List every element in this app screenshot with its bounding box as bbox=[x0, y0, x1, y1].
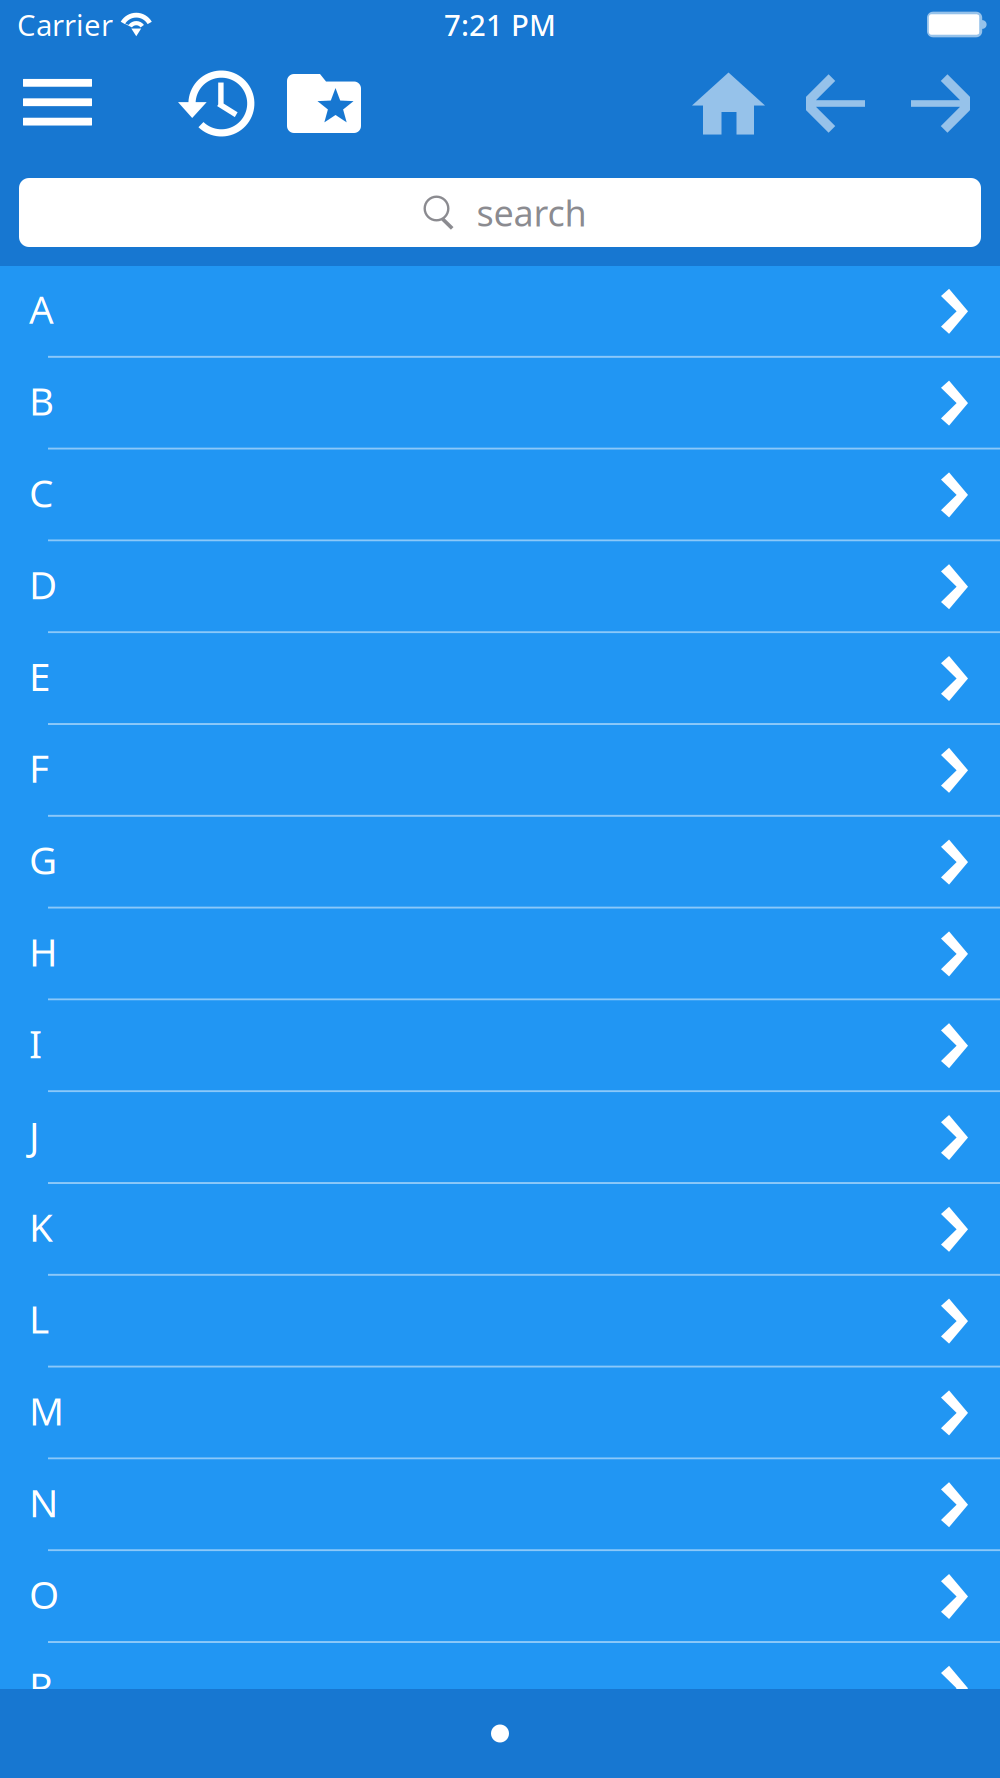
staticText: 7:21 PM bbox=[444, 5, 556, 44]
staticText: H bbox=[29, 926, 58, 977]
button[interactable]: G bbox=[0, 817, 1000, 909]
staticText: Carrier bbox=[17, 5, 113, 44]
staticText: C bbox=[29, 467, 53, 518]
staticText: search bbox=[476, 189, 586, 236]
button[interactable]: E bbox=[0, 633, 1000, 725]
staticText: M bbox=[29, 1385, 64, 1436]
button[interactable]: Home bbox=[692, 72, 765, 134]
staticText: I bbox=[29, 1017, 42, 1069]
staticText: A bbox=[29, 283, 54, 334]
staticText: K bbox=[29, 1201, 53, 1252]
staticText: P bbox=[29, 1660, 52, 1711]
staticText: E bbox=[29, 650, 50, 702]
button[interactable]: Menu bbox=[23, 79, 92, 128]
staticText: J bbox=[29, 1109, 40, 1161]
button[interactable]: History bbox=[178, 70, 259, 136]
button[interactable]: Favorites bbox=[287, 74, 361, 133]
button[interactable]: P bbox=[0, 1643, 1000, 1735]
button[interactable]: K bbox=[0, 1184, 1000, 1276]
button[interactable]: M bbox=[0, 1368, 1000, 1459]
button[interactable]: N bbox=[0, 1459, 1000, 1551]
staticText: B bbox=[29, 375, 54, 426]
button[interactable]: A bbox=[0, 266, 1000, 358]
button[interactable]: F bbox=[0, 725, 1000, 817]
button[interactable]: D bbox=[0, 541, 1000, 633]
staticText: F bbox=[29, 742, 49, 793]
button[interactable]: Q bbox=[0, 1735, 1000, 1778]
staticText: O bbox=[29, 1568, 59, 1620]
button[interactable]: H bbox=[0, 909, 1000, 1000]
staticText: G bbox=[29, 834, 57, 885]
button[interactable]: I bbox=[0, 1000, 1000, 1092]
staticText: N bbox=[29, 1476, 58, 1528]
button[interactable]: Forward bbox=[911, 74, 970, 132]
button[interactable]: O bbox=[0, 1551, 1000, 1643]
button[interactable]: Back bbox=[806, 74, 865, 132]
button[interactable]: B bbox=[0, 358, 1000, 450]
button[interactable]: J bbox=[0, 1092, 1000, 1184]
button[interactable]: C bbox=[0, 450, 1000, 541]
staticText: D bbox=[29, 558, 57, 610]
button[interactable]: L bbox=[0, 1276, 1000, 1368]
staticText: L bbox=[29, 1293, 49, 1344]
button[interactable]: search bbox=[19, 178, 981, 247]
